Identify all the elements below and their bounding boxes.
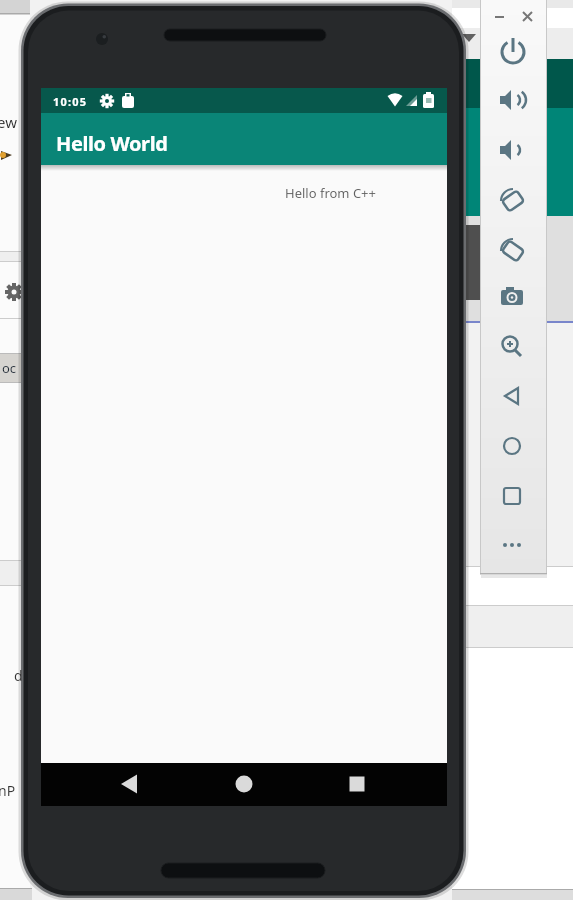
staticText: Hello World bbox=[56, 130, 168, 157]
staticText: Hello from C++ bbox=[285, 184, 376, 202]
staticText: nP bbox=[0, 781, 16, 800]
staticText: 10:05 bbox=[53, 94, 88, 109]
staticText: oc bbox=[2, 359, 17, 377]
staticText: d bbox=[14, 666, 23, 685]
staticText: ew bbox=[0, 112, 17, 132]
